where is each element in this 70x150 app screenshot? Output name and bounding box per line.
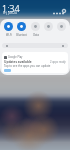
button[interactable]: Quick setting	[56, 22, 67, 33]
staticText: Data	[33, 33, 39, 37]
button[interactable]	[2, 43, 68, 48]
staticText: Updates available	[4, 60, 32, 64]
staticText: Wi-Fi	[6, 33, 12, 37]
staticText: Tap to see the apps you can update	[4, 64, 51, 68]
button[interactable]: Google Play	[2, 52, 68, 73]
button[interactable]	[4, 69, 11, 72]
button[interactable]: Wi-Fi	[3, 22, 14, 37]
button[interactable]: Quick setting	[43, 22, 54, 33]
staticText: 1:34	[2, 2, 20, 14]
staticText: 2 apps ready	[50, 60, 66, 64]
button[interactable]: Data	[30, 22, 41, 37]
staticText: Fri, Jan 24	[3, 11, 17, 15]
staticText: Bluetooth	[16, 33, 27, 37]
staticText: Google Play	[8, 55, 23, 59]
button[interactable]: Bluetooth	[16, 22, 27, 37]
button[interactable]: Settings	[61, 8, 67, 14]
